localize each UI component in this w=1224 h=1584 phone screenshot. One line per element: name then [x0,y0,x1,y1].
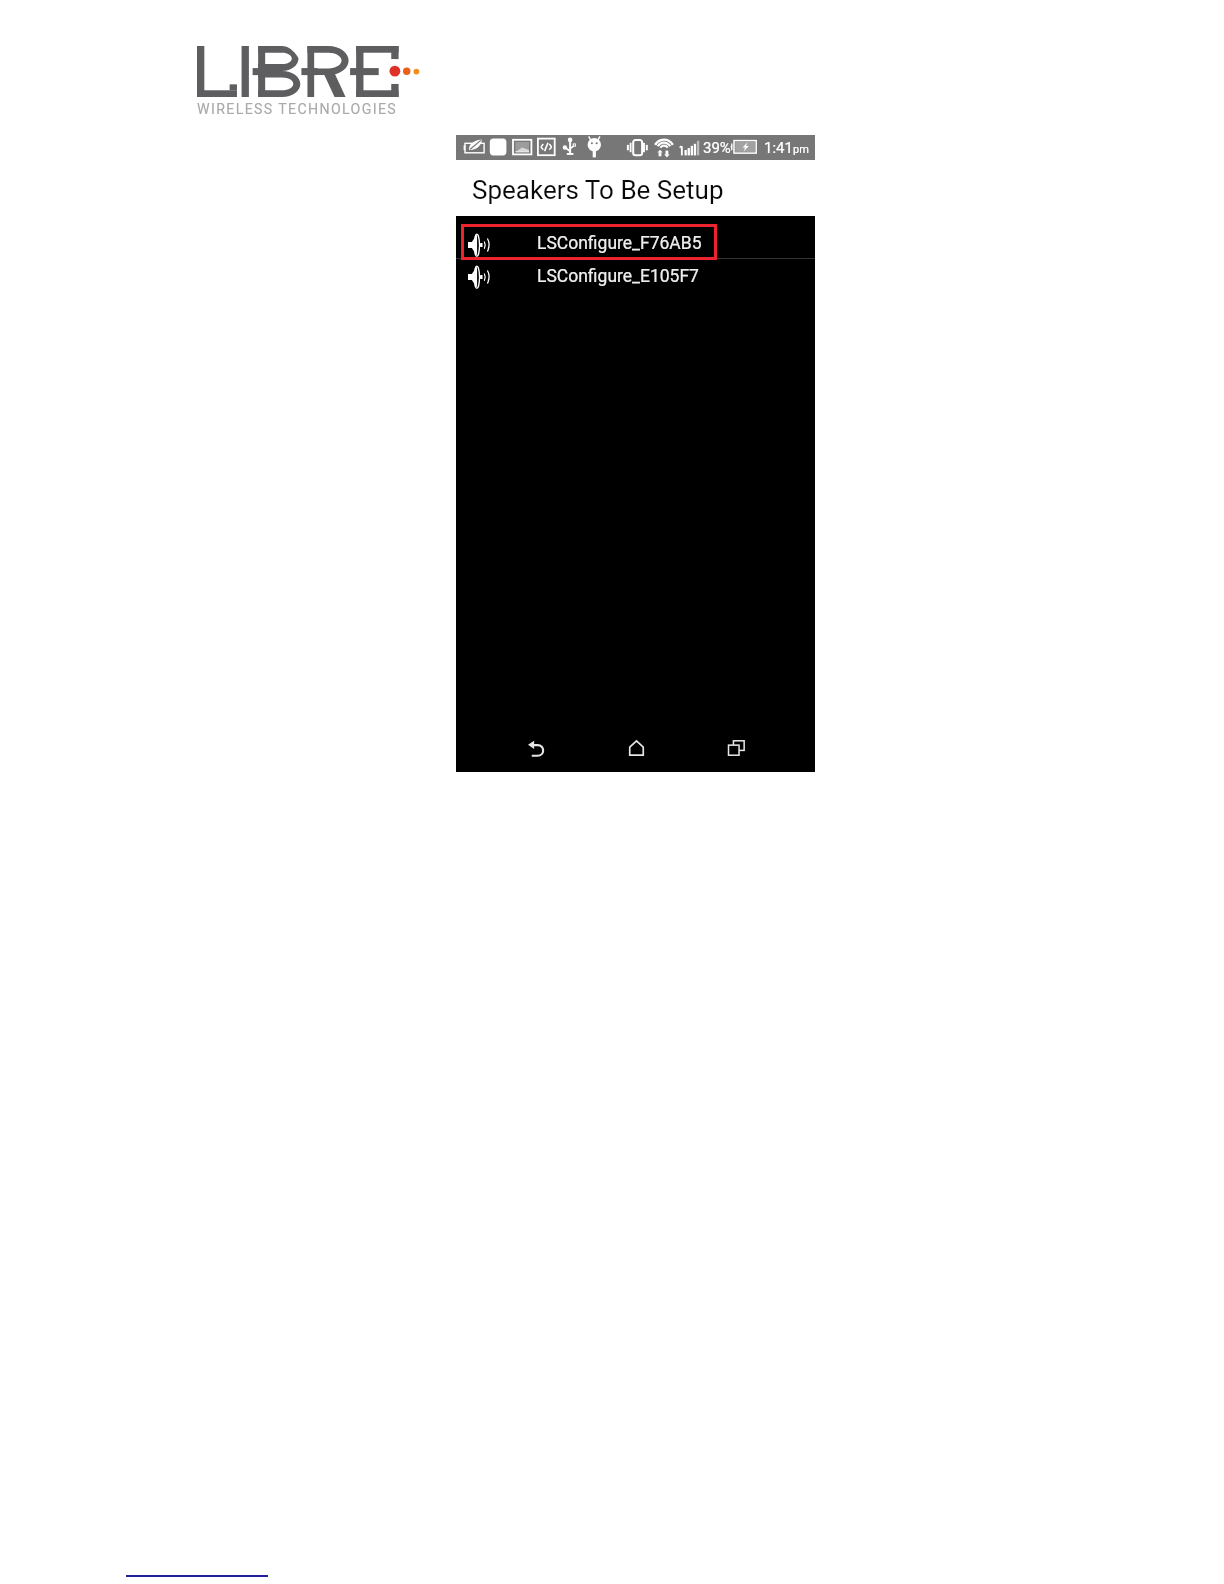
button[interactable]: LSConfigure_F76AB5 [456,225,815,258]
staticText: 1:41 [764,139,793,157]
button[interactable]: Recent apps [711,726,761,770]
staticText: 39% [703,139,731,157]
staticText: LSConfigure_E105F7 [537,266,699,287]
button[interactable]: Home [611,726,661,770]
staticText: WIRELESS TECHNOLOGIES [197,101,398,118]
staticText: Speakers To Be Setup [472,175,724,205]
button[interactable]: Back [511,726,561,770]
staticText: pm [793,143,809,156]
button[interactable]: LSConfigure_E105F7 [456,259,815,292]
staticText: LSConfigure_F76AB5 [537,233,702,254]
